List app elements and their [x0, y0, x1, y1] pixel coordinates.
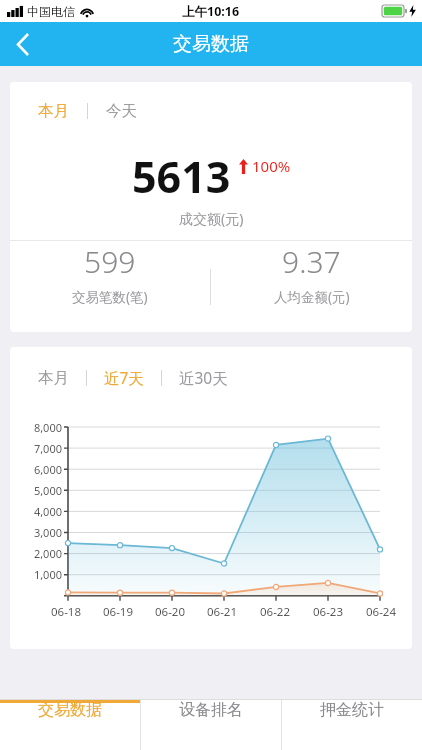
- button[interactable]: 本月: [36, 365, 71, 391]
- staticText: 今天: [106, 101, 137, 121]
- staticText: 5613: [132, 147, 231, 206]
- staticText: 06-22: [260, 604, 291, 620]
- staticText: 100%: [252, 156, 291, 176]
- staticText: 3,000: [33, 525, 62, 540]
- staticText: 2,000: [33, 546, 62, 561]
- staticText: 近7天: [104, 367, 144, 388]
- staticText: 中国电信: [27, 4, 75, 19]
- staticText: 交易数据: [173, 32, 249, 56]
- staticText: 押金统计: [320, 700, 384, 720]
- staticText: 9.37: [282, 241, 341, 282]
- staticText: 设备排名: [179, 700, 243, 720]
- button[interactable]: 今天: [104, 98, 139, 124]
- staticText: 成交额(元): [179, 209, 244, 228]
- button[interactable]: 近30天: [177, 364, 230, 391]
- staticText: 06-21: [207, 604, 238, 620]
- staticText: 7,000: [33, 441, 62, 456]
- staticText: 人均金额(元): [274, 288, 350, 306]
- staticText: 06-23: [313, 604, 344, 620]
- staticText: 近30天: [179, 367, 228, 388]
- staticText: 交易笔数(笔): [72, 288, 148, 306]
- staticText: 06-24: [366, 604, 397, 620]
- staticText: 上午10:16: [182, 3, 240, 20]
- button[interactable]: 交易数据: [0, 700, 140, 720]
- button[interactable]: 本月: [36, 98, 71, 124]
- staticText: 1,000: [33, 567, 62, 582]
- staticText: 5,000: [33, 483, 62, 498]
- button[interactable]: 设备排名: [141, 700, 281, 720]
- button[interactable]: 押金统计: [282, 700, 422, 720]
- staticText: 06-20: [155, 604, 186, 620]
- staticText: 6,000: [33, 462, 62, 477]
- staticText: 4,000: [33, 504, 62, 519]
- staticText: 本月: [38, 368, 69, 388]
- button[interactable]: 近7天: [102, 364, 146, 391]
- staticText: 交易数据: [38, 700, 102, 720]
- staticText: 8,000: [33, 420, 62, 435]
- staticText: 599: [84, 241, 136, 282]
- staticText: 本月: [38, 101, 69, 121]
- staticText: 06-18: [51, 604, 82, 620]
- button[interactable]: Back: [0, 22, 46, 66]
- staticText: 06-19: [103, 604, 134, 620]
